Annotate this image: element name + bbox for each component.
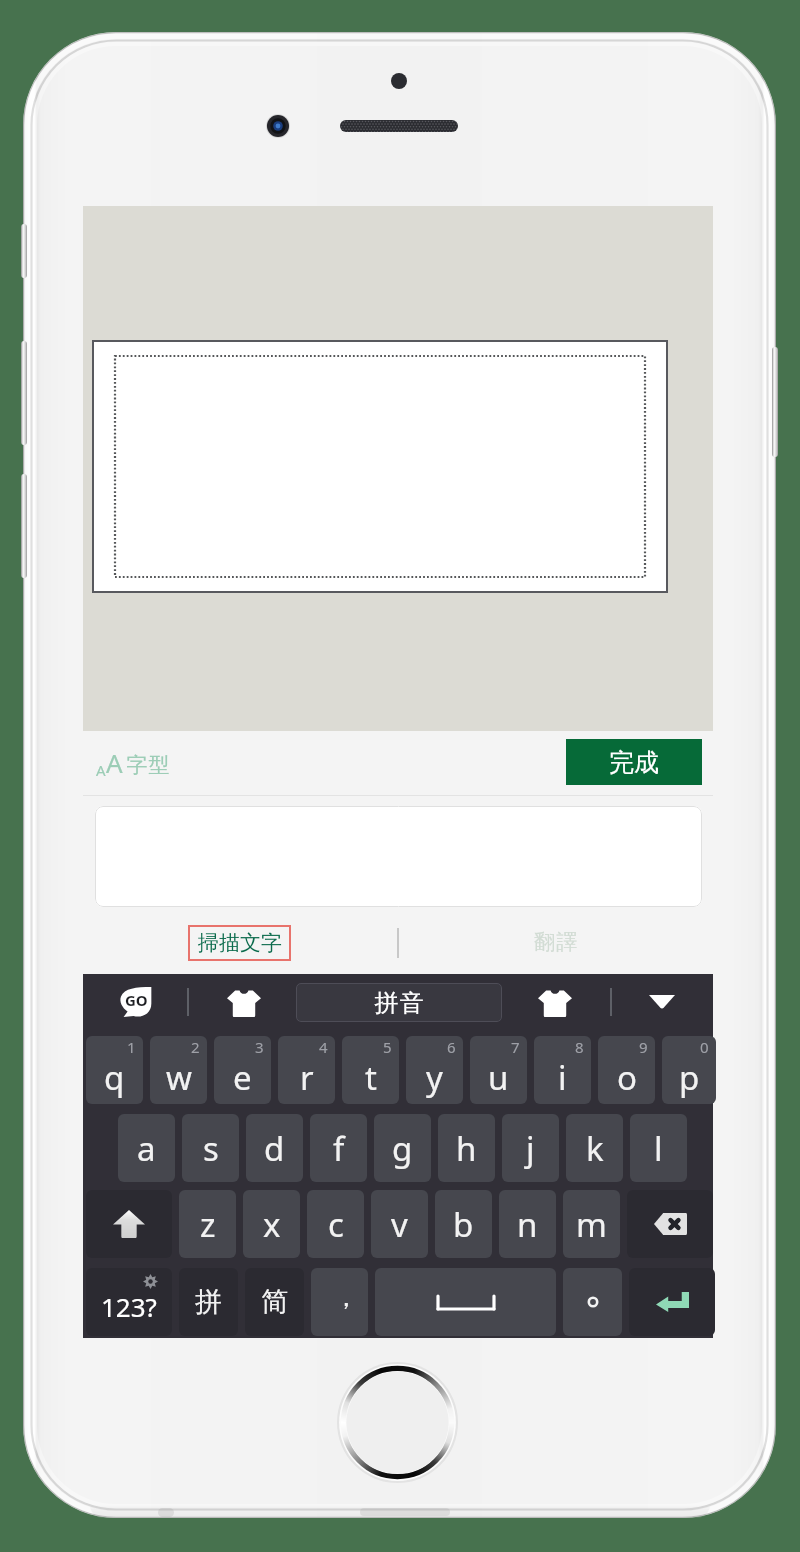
- staticText: c: [328, 1202, 344, 1247]
- button[interactable]: 8: [534, 1036, 591, 1104]
- button[interactable]: s: [182, 1114, 239, 1182]
- button[interactable]: b: [435, 1190, 492, 1258]
- button[interactable]: m: [563, 1190, 620, 1258]
- button[interactable]: Enter: [629, 1268, 715, 1336]
- button[interactable]: v: [371, 1190, 428, 1258]
- button[interactable]: 拼: [179, 1268, 238, 1336]
- staticText: o: [617, 1055, 637, 1100]
- button[interactable]: l: [630, 1114, 687, 1182]
- button[interactable]: ，: [311, 1268, 368, 1336]
- staticText: 简: [261, 1285, 288, 1319]
- staticText: 9: [639, 1037, 648, 1057]
- staticText: ，: [333, 1281, 359, 1314]
- staticText: 字型: [126, 752, 170, 778]
- staticText: 1: [127, 1037, 136, 1057]
- button[interactable]: 翻譯: [486, 922, 627, 962]
- button[interactable]: x: [243, 1190, 300, 1258]
- button[interactable]: Home: [337, 1362, 458, 1483]
- button[interactable]: 6: [406, 1036, 463, 1104]
- staticText: 8: [575, 1037, 584, 1057]
- staticText: g: [392, 1126, 413, 1171]
- button[interactable]: 掃描文字: [188, 925, 291, 961]
- staticText: b: [453, 1202, 474, 1247]
- staticText: 4: [319, 1037, 328, 1057]
- button[interactable]: c: [307, 1190, 364, 1258]
- staticText: 6: [447, 1037, 456, 1057]
- staticText: v: [391, 1202, 408, 1247]
- staticText: 123?: [101, 1289, 157, 1324]
- staticText: 拼音: [374, 988, 424, 1018]
- button[interactable]: z: [179, 1190, 236, 1258]
- button[interactable]: Hide keyboard: [636, 982, 688, 1022]
- staticText: 5: [383, 1037, 392, 1057]
- staticText: p: [679, 1055, 700, 1100]
- staticText: s: [203, 1126, 219, 1171]
- button[interactable]: f: [310, 1114, 367, 1182]
- button[interactable]: A: [96, 745, 170, 780]
- staticText: i: [558, 1055, 567, 1100]
- button[interactable]: h: [438, 1114, 495, 1182]
- staticText: r: [300, 1055, 314, 1100]
- staticText: 拼: [195, 1285, 222, 1319]
- staticText: n: [517, 1202, 538, 1247]
- staticText: 2: [191, 1037, 200, 1057]
- staticText: 7: [511, 1037, 520, 1057]
- button[interactable]: 2: [150, 1036, 207, 1104]
- button[interactable]: k: [566, 1114, 623, 1182]
- staticText: 掃描文字: [198, 930, 282, 956]
- button[interactable]: d: [246, 1114, 303, 1182]
- button[interactable]: a: [118, 1114, 175, 1182]
- staticText: u: [488, 1055, 509, 1100]
- button[interactable]: 5: [342, 1036, 399, 1104]
- button[interactable]: Theme: [534, 985, 576, 1021]
- staticText: 3: [255, 1037, 264, 1057]
- staticText: f: [333, 1126, 345, 1171]
- staticText: 0: [700, 1037, 709, 1057]
- staticText: 完成: [609, 747, 659, 778]
- staticText: GO: [125, 990, 148, 1010]
- button[interactable]: 7: [470, 1036, 527, 1104]
- staticText: a: [137, 1126, 156, 1171]
- button[interactable]: 0: [662, 1036, 716, 1104]
- staticText: z: [200, 1202, 216, 1247]
- button[interactable]: Space: [375, 1268, 556, 1336]
- button[interactable]: Period: [563, 1268, 622, 1336]
- button[interactable]: 1: [86, 1036, 143, 1104]
- staticText: x: [263, 1202, 281, 1247]
- button[interactable]: GO Keyboard: [119, 987, 152, 1017]
- button[interactable]: Numbers and symbols: [86, 1268, 172, 1336]
- button[interactable]: Backspace: [627, 1190, 713, 1258]
- staticText: q: [104, 1055, 125, 1100]
- staticText: t: [365, 1055, 377, 1100]
- button[interactable]: 完成: [566, 739, 702, 785]
- staticText: A: [106, 745, 123, 780]
- button[interactable]: 简: [245, 1268, 304, 1336]
- staticText: w: [166, 1055, 192, 1100]
- button[interactable]: Shift: [86, 1190, 172, 1258]
- staticText: k: [586, 1126, 604, 1171]
- button[interactable]: 4: [278, 1036, 335, 1104]
- staticText: e: [233, 1055, 252, 1100]
- staticText: y: [426, 1055, 443, 1100]
- staticText: 翻譯: [534, 929, 579, 955]
- staticText: l: [654, 1126, 663, 1171]
- staticText: m: [576, 1202, 607, 1247]
- button[interactable]: [95, 806, 702, 907]
- staticText: j: [526, 1126, 535, 1171]
- button[interactable]: 9: [598, 1036, 655, 1104]
- staticText: h: [456, 1126, 477, 1171]
- button[interactable]: 拼音: [296, 983, 502, 1022]
- button[interactable]: 3: [214, 1036, 271, 1104]
- button[interactable]: g: [374, 1114, 431, 1182]
- staticText: d: [264, 1126, 285, 1171]
- button[interactable]: j: [502, 1114, 559, 1182]
- button[interactable]: n: [499, 1190, 556, 1258]
- button[interactable]: Theme: [223, 985, 265, 1021]
- staticText: A: [96, 760, 106, 780]
